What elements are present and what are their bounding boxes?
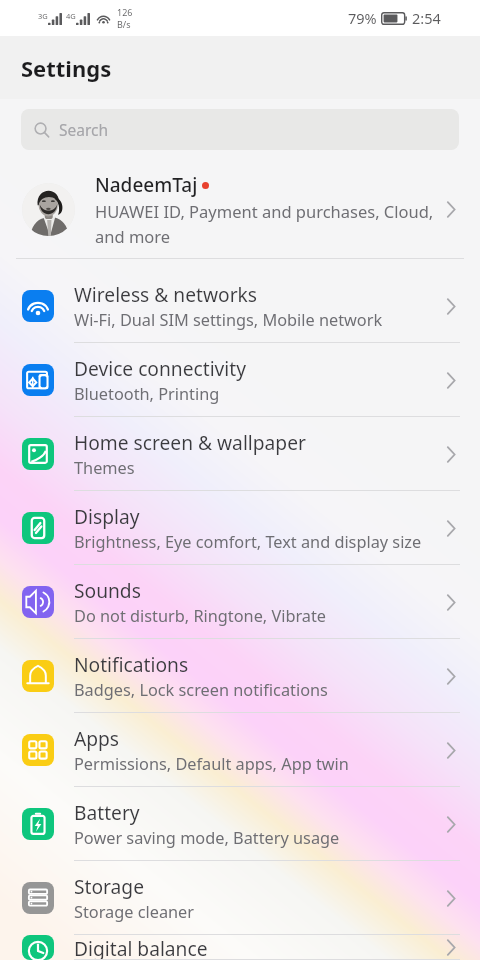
button[interactable]: Sounds (0, 565, 480, 639)
button[interactable]: Search (21, 109, 459, 150)
button[interactable]: Digital balance (0, 935, 480, 960)
staticText: Display (74, 503, 140, 529)
button[interactable]: Apps (0, 713, 480, 787)
button[interactable]: Display (0, 491, 480, 565)
staticText: Settings (21, 53, 112, 83)
staticText: HUAWEI ID, Payment and purchases, Cloud,… (95, 200, 436, 247)
staticText: Device connectivity (74, 355, 247, 381)
button[interactable]: Notifications (0, 639, 480, 713)
staticText: Brightness, Eye comfort, Text and displa… (74, 531, 422, 553)
staticText: Home screen & wallpaper (74, 429, 306, 455)
staticText: Themes (74, 457, 135, 479)
button[interactable]: Wireless & networks (0, 269, 480, 343)
staticText: 126 (117, 6, 133, 18)
staticText: Permissions, Default apps, App twin (74, 753, 349, 775)
staticText: Storage (74, 873, 144, 899)
staticText: Notifications (74, 651, 189, 677)
staticText: Wireless & networks (74, 281, 257, 307)
staticText: Bluetooth, Printing (74, 383, 220, 405)
staticText: 4G (66, 11, 76, 21)
staticText: Battery (74, 799, 140, 825)
staticText: B/s (117, 18, 131, 30)
staticText: Search (59, 119, 109, 140)
staticText: Apps (74, 725, 120, 751)
button[interactable]: Device connectivity (0, 343, 480, 417)
staticText: Storage cleaner (74, 901, 195, 923)
button[interactable]: Home screen & wallpaper (0, 417, 480, 491)
staticText: 79% (348, 8, 377, 28)
staticText: Digital balance (74, 935, 208, 960)
staticText: NadeemTaj (95, 172, 198, 198)
button[interactable]: Storage (0, 861, 480, 935)
staticText: Wi-Fi, Dual SIM settings, Mobile network (74, 309, 383, 331)
button[interactable]: Battery (0, 787, 480, 861)
staticText: Sounds (74, 577, 141, 603)
button[interactable]: NadeemTaj (0, 161, 480, 258)
staticText: Power saving mode, Battery usage (74, 827, 340, 849)
staticText: Badges, Lock screen notifications (74, 679, 328, 701)
staticText: Do not disturb, Ringtone, Vibrate (74, 605, 327, 627)
staticText: 3G (38, 11, 48, 21)
staticText: 2:54 (412, 8, 441, 28)
